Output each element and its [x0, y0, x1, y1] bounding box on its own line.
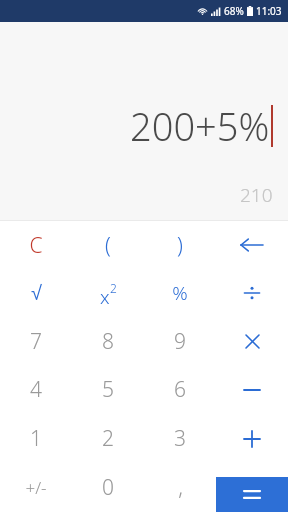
button[interactable]: 1: [0, 414, 72, 463]
staticText: (: [105, 231, 111, 260]
button[interactable]: 6: [144, 365, 216, 414]
staticText: ): [177, 231, 183, 260]
button[interactable]: ): [144, 221, 216, 269]
button[interactable]: √: [0, 269, 72, 317]
button[interactable]: 4: [0, 365, 72, 414]
staticText: 1: [30, 424, 42, 453]
staticText: 68%: [224, 4, 244, 18]
button[interactable]: 0: [72, 463, 144, 512]
button[interactable]: Multiply: [216, 317, 288, 365]
staticText: 2: [102, 424, 114, 453]
button[interactable]: %: [144, 269, 216, 317]
button[interactable]: Minus: [216, 365, 288, 414]
staticText: 210: [240, 182, 273, 208]
staticText: %: [172, 280, 188, 306]
staticText: x: [100, 284, 110, 310]
staticText: 5: [102, 375, 114, 404]
button[interactable]: ,: [144, 463, 216, 512]
button[interactable]: 8: [72, 317, 144, 365]
staticText: 3: [174, 424, 186, 453]
staticText: 9: [174, 327, 186, 356]
staticText: +/-: [25, 476, 47, 499]
staticText: 200+5%: [130, 100, 270, 152]
button[interactable]: 7: [0, 317, 72, 365]
button[interactable]: C: [0, 221, 72, 269]
staticText: 2: [110, 280, 117, 296]
button[interactable]: Divide: [216, 269, 288, 317]
button[interactable]: Equals: [216, 477, 288, 512]
staticText: 7: [30, 327, 42, 356]
staticText: 11:03: [256, 4, 282, 18]
button[interactable]: +/-: [0, 463, 72, 512]
staticText: C: [29, 231, 43, 260]
button[interactable]: 2: [72, 414, 144, 463]
button[interactable]: Plus: [216, 414, 288, 463]
staticText: 6: [174, 375, 186, 404]
button[interactable]: 5: [72, 365, 144, 414]
button[interactable]: 9: [144, 317, 216, 365]
button[interactable]: (: [72, 221, 144, 269]
staticText: ,: [178, 473, 183, 502]
button[interactable]: 3: [144, 414, 216, 463]
button[interactable]: Backspace: [216, 221, 288, 269]
staticText: 0: [102, 473, 114, 502]
staticText: 8: [102, 327, 114, 356]
staticText: √: [31, 282, 42, 304]
button[interactable]: x: [72, 269, 144, 317]
staticText: 4: [30, 375, 42, 404]
